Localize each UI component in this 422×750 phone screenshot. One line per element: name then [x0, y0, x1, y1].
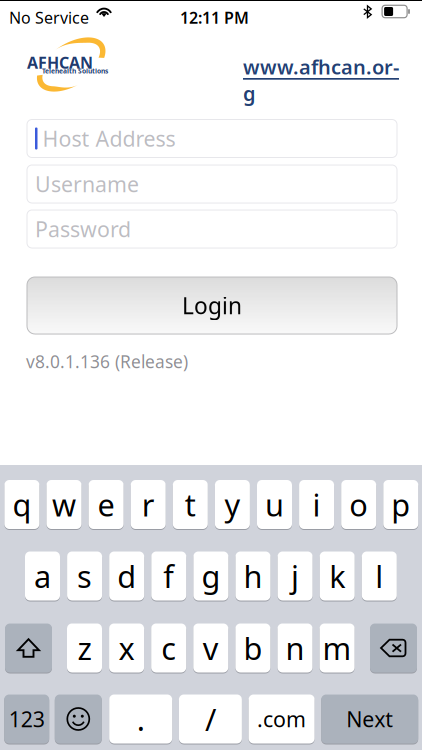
staticText: p [391, 484, 410, 525]
button[interactable] [109, 694, 172, 744]
staticText: .com [257, 705, 306, 733]
staticText: s [77, 556, 92, 596]
button[interactable] [320, 551, 355, 601]
staticText: r [142, 484, 155, 525]
staticText: d [117, 556, 136, 596]
button[interactable] [341, 480, 376, 530]
button[interactable] [299, 480, 334, 530]
button[interactable] [321, 694, 418, 744]
staticText: Username [35, 170, 139, 198]
button[interactable] [151, 551, 186, 601]
staticText: v8.0.1.136 (Release) [26, 350, 188, 373]
button[interactable] [67, 623, 102, 673]
button[interactable] [109, 623, 144, 673]
staticText: u [265, 484, 284, 525]
button[interactable] [193, 551, 228, 601]
staticText: Next [346, 705, 393, 733]
staticText: 123 [9, 705, 45, 733]
button[interactable] [278, 551, 313, 601]
staticText: / [205, 699, 216, 739]
button[interactable]: Password [27, 210, 397, 248]
button[interactable] [235, 623, 270, 673]
staticText: c [161, 628, 176, 668]
button[interactable] [383, 480, 418, 530]
button[interactable] [179, 694, 242, 744]
button[interactable] [67, 551, 102, 601]
button[interactable] [215, 480, 250, 530]
button[interactable] [362, 551, 397, 601]
button[interactable] [320, 623, 355, 673]
staticText: a [34, 556, 51, 596]
staticText: v [203, 628, 219, 668]
button[interactable] [235, 551, 270, 601]
staticText: . [137, 699, 145, 739]
button[interactable] [277, 623, 312, 673]
staticText: b [243, 628, 262, 668]
staticText: y [224, 484, 240, 525]
staticText: n [285, 628, 304, 668]
button[interactable] [4, 480, 39, 530]
staticText: t [185, 484, 196, 525]
staticText: AFHCAN [27, 52, 93, 73]
staticText: z [77, 628, 91, 668]
button[interactable]: Delete [370, 623, 417, 673]
button[interactable] [25, 551, 60, 601]
button[interactable] [89, 480, 124, 530]
button[interactable]: Username [27, 165, 397, 203]
staticText: Password [35, 215, 131, 243]
staticText: g [201, 556, 220, 596]
staticText: o [349, 484, 368, 525]
button[interactable] [249, 694, 315, 744]
staticText: e [98, 484, 115, 525]
staticText: q [12, 484, 31, 525]
button[interactable]: Emoji [55, 694, 102, 744]
button[interactable] [193, 623, 228, 673]
staticText: f [163, 556, 174, 596]
staticText: i [313, 484, 321, 525]
button[interactable] [4, 694, 49, 744]
staticText: www.afhcan.org [243, 53, 399, 106]
staticText: Telehealth Solutions [42, 67, 108, 75]
staticText: 12:11 PM [180, 7, 249, 28]
staticText: k [329, 556, 345, 596]
staticText: m [323, 628, 352, 668]
staticText: No Service [9, 7, 89, 28]
button[interactable] [46, 480, 81, 530]
button[interactable] [173, 480, 208, 530]
staticText: j [291, 556, 299, 596]
staticText: h [243, 556, 262, 596]
staticText: l [375, 556, 383, 596]
button[interactable]: www.afhcan.org [243, 61, 401, 89]
staticText: w [52, 484, 76, 525]
button[interactable] [131, 480, 166, 530]
button[interactable] [257, 480, 292, 530]
button[interactable] [109, 551, 144, 601]
staticText: Login [182, 290, 242, 320]
button[interactable] [151, 623, 186, 673]
staticText: x [119, 628, 135, 668]
button[interactable]: Shift [5, 623, 52, 673]
staticText: Host Address [42, 124, 175, 153]
button[interactable]: Host Address [27, 119, 397, 157]
button[interactable]: Login [27, 277, 397, 334]
